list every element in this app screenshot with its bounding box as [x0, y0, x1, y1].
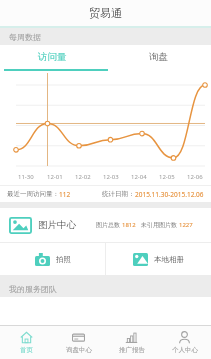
staticText: 2015.11.30-2015.12.06: [135, 190, 204, 199]
staticText: 1812: [122, 221, 136, 229]
other: 推广报告: [125, 331, 138, 344]
staticText: 图片总数: [96, 221, 122, 229]
staticText: 12-06: [187, 173, 203, 181]
staticText: 询盘中心: [66, 346, 92, 354]
staticText: 个人中心: [172, 346, 198, 354]
staticText: 询盘: [149, 51, 168, 63]
staticText: 本地相册: [154, 255, 184, 264]
staticText: 12-02: [75, 173, 91, 181]
button[interactable]: 推广报告: [105, 326, 158, 359]
staticText: 首页: [20, 346, 33, 354]
staticText: 我的服务团队: [9, 284, 57, 294]
button[interactable]: 本地相册: [106, 243, 211, 275]
other: 询盘中心: [72, 331, 85, 344]
button[interactable]: 首页: [0, 326, 52, 359]
staticText: 图片中心: [38, 219, 76, 231]
button[interactable]: 个人中心: [158, 326, 211, 359]
staticText: 12-03: [103, 173, 119, 181]
staticText: 每周数据: [9, 32, 41, 42]
staticText: 12-01: [47, 173, 63, 181]
staticText: 1227: [179, 221, 193, 229]
staticText: 未引用图片数: [141, 221, 179, 229]
staticText: 12-04: [131, 173, 147, 181]
staticText: 访问量: [38, 51, 67, 63]
button[interactable]: 访问量: [0, 45, 105, 69]
staticText: 112: [59, 190, 71, 199]
button[interactable]: 询盘中心: [52, 326, 105, 359]
staticText: 统计日期：: [102, 190, 135, 198]
button[interactable]: 图片中心: [0, 208, 211, 242]
staticText: 拍照: [56, 255, 71, 264]
button[interactable]: 拍照: [0, 243, 105, 275]
staticText: 推广报告: [119, 346, 145, 354]
staticText: 11-30: [18, 173, 34, 181]
staticText: 贸易通: [89, 6, 122, 20]
button[interactable]: 询盘: [105, 45, 211, 69]
staticText: 最近一周访问量：: [7, 190, 59, 198]
staticText: 12-05: [159, 173, 175, 181]
other: 首页: [20, 331, 33, 344]
other: 个人中心: [178, 331, 191, 344]
